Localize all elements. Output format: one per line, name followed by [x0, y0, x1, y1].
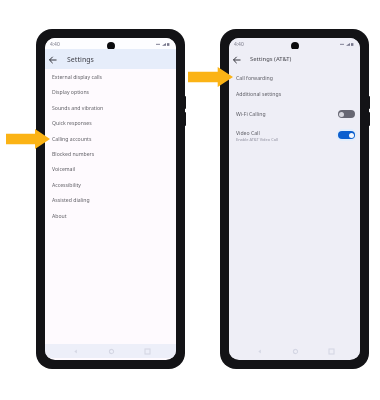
button[interactable]: Home: [105, 345, 117, 357]
staticText: Wi-Fi Calling: [236, 110, 266, 117]
button[interactable]: Display options: [45, 84, 176, 99]
button[interactable]: Voicemail: [45, 161, 176, 176]
button[interactable]: Sounds and vibration: [45, 100, 176, 115]
other: Step 2: [188, 67, 233, 87]
button[interactable]: Wi-Fi Calling: [229, 103, 360, 125]
button[interactable]: Call forwarding: [229, 70, 360, 85]
button[interactable]: Additional settings: [229, 86, 360, 101]
button[interactable]: Assisted dialing: [45, 192, 176, 207]
button[interactable]: Blocked numbers: [45, 146, 176, 161]
staticText: Quick responses: [52, 119, 92, 126]
button[interactable]: Recent apps: [141, 345, 153, 357]
button[interactable]: Navigate up: [46, 53, 59, 66]
button[interactable]: Recent apps: [325, 345, 337, 357]
button[interactable]: Home: [289, 345, 301, 357]
button[interactable]: Quick responses: [45, 115, 176, 130]
staticText: Sounds and vibration: [52, 104, 104, 111]
button[interactable]: About: [45, 208, 176, 223]
staticText: Accessibility: [52, 181, 81, 188]
staticText: Voicemail: [52, 165, 76, 172]
button[interactable]: Calling accounts: [45, 131, 176, 146]
staticText: Settings: [67, 55, 94, 64]
staticText: Calling accounts: [52, 135, 92, 142]
staticText: External display calls: [52, 73, 102, 80]
staticText: About: [52, 212, 67, 219]
button[interactable]: Video Call: [229, 122, 360, 144]
other: Step 1: [6, 129, 50, 149]
staticText: Enable AT&T Video Call: [236, 137, 278, 142]
staticText: Call forwarding: [236, 74, 273, 81]
staticText: Blocked numbers: [52, 150, 95, 157]
button[interactable]: External display calls: [45, 69, 176, 84]
button[interactable]: Accessibility: [45, 177, 176, 192]
button[interactable]: Navigate up: [230, 53, 243, 66]
staticText: Assisted dialing: [52, 196, 90, 203]
button[interactable]: Back: [69, 345, 81, 357]
staticText: Additional settings: [236, 90, 282, 97]
staticText: Video Call: [236, 129, 260, 136]
staticText: Display options: [52, 88, 90, 95]
button[interactable]: Back: [253, 345, 265, 357]
staticText: 4:40: [234, 41, 244, 48]
staticText: 4:40: [50, 41, 60, 48]
staticText: Settings (AT&T): [250, 55, 292, 63]
